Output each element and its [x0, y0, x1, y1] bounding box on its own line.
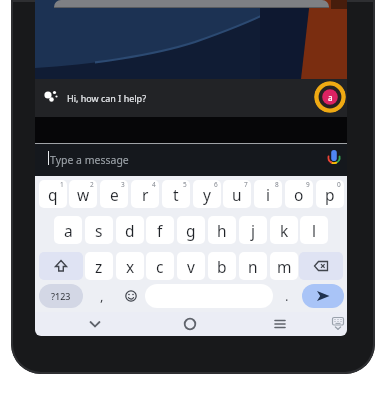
button[interactable]: e [100, 180, 128, 208]
staticText: s [95, 220, 103, 241]
staticText: x [126, 256, 135, 277]
button[interactable]: a [54, 216, 82, 244]
staticText: ?123 [51, 290, 71, 302]
button[interactable]: ?123 [39, 284, 83, 308]
staticText: h [217, 220, 227, 241]
staticText: o [294, 184, 304, 205]
button[interactable]: h [208, 216, 236, 244]
button[interactable]: w [69, 180, 97, 208]
staticText: p [325, 184, 335, 205]
staticText: k [280, 220, 289, 241]
button[interactable]: a [314, 81, 346, 113]
button[interactable]: u [223, 180, 251, 208]
button[interactable]: x [116, 252, 144, 280]
button[interactable]: z [85, 252, 113, 280]
staticText: Type a message [50, 153, 129, 167]
staticText: y [203, 184, 211, 205]
staticText: e [110, 184, 119, 205]
button[interactable] [299, 252, 343, 280]
staticText: i [266, 184, 270, 205]
button[interactable]: g [177, 216, 205, 244]
staticText: 0 [337, 180, 341, 189]
staticText: t [173, 184, 179, 205]
staticText: a [328, 92, 333, 103]
button[interactable]: s [85, 216, 113, 244]
button[interactable]: r [131, 180, 159, 208]
button[interactable] [117, 284, 145, 308]
button[interactable] [81, 312, 109, 336]
button[interactable]: t [162, 180, 190, 208]
button[interactable]: v [177, 252, 205, 280]
staticText: v [187, 256, 195, 277]
staticText: 2 [90, 180, 94, 189]
staticText: 5 [183, 180, 187, 189]
button[interactable] [302, 284, 344, 308]
button[interactable]: b [208, 252, 236, 280]
button[interactable] [176, 312, 204, 336]
staticText: 4 [152, 180, 156, 189]
button[interactable]: f [146, 216, 174, 244]
staticText: r [142, 184, 149, 205]
button[interactable]: c [146, 252, 174, 280]
staticText: a [64, 220, 73, 241]
button[interactable]: d [116, 216, 144, 244]
staticText: u [232, 184, 242, 205]
button[interactable] [266, 312, 294, 336]
staticText: n [248, 256, 258, 277]
button[interactable]: , [88, 284, 116, 308]
button[interactable] [39, 252, 83, 280]
staticText: c [156, 256, 164, 277]
staticText: Hi, how can I help? [67, 92, 147, 104]
button[interactable]: Type a message [35, 143, 347, 176]
staticText: l [312, 220, 316, 241]
button[interactable]: . [273, 284, 301, 308]
staticText: w [77, 184, 90, 205]
staticText: 8 [275, 180, 279, 189]
staticText: j [251, 220, 255, 241]
staticText: 9 [306, 180, 310, 189]
button[interactable]: j [239, 216, 267, 244]
button[interactable]: m [270, 252, 298, 280]
button[interactable]: i [254, 180, 282, 208]
button[interactable]: p [316, 180, 344, 208]
button[interactable]: k [270, 216, 298, 244]
staticText: 7 [244, 180, 248, 189]
staticText: 6 [214, 180, 218, 189]
button[interactable]: o [285, 180, 313, 208]
button[interactable]: y [193, 180, 221, 208]
staticText: 1 [60, 180, 64, 189]
button[interactable] [145, 284, 273, 308]
staticText: z [95, 256, 103, 277]
button[interactable]: q [39, 180, 67, 208]
button[interactable]: l [300, 216, 328, 244]
staticText: , [100, 287, 104, 305]
staticText: f [157, 220, 163, 241]
button[interactable] [323, 146, 345, 168]
staticText: q [48, 184, 58, 205]
button[interactable] [324, 312, 347, 336]
staticText: . [285, 287, 289, 305]
staticText: g [186, 220, 196, 241]
button[interactable]: n [239, 252, 267, 280]
staticText: m [277, 256, 292, 277]
staticText: d [125, 220, 135, 241]
staticText: 3 [121, 180, 125, 189]
staticText: b [217, 256, 227, 277]
